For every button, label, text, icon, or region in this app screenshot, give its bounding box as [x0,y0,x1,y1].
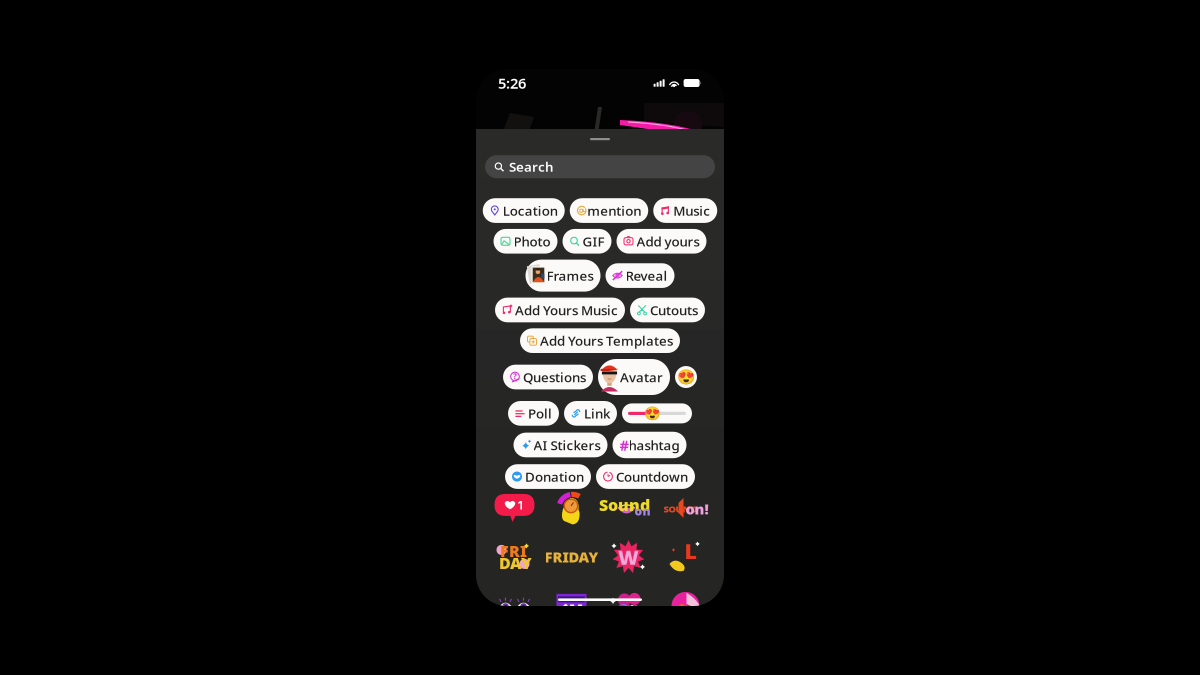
staticText: on! [685,499,708,519]
staticText: FRI [500,540,527,561]
button[interactable]: Poll [508,401,559,426]
button[interactable]: Sticker [600,588,657,624]
staticText: Search [509,158,554,175]
staticText: Donation [525,468,584,485]
staticText: Music [673,202,710,219]
staticText: Location [503,202,558,219]
button[interactable]: Sticker [600,539,657,575]
button[interactable]: Link [564,401,617,426]
button[interactable]: AI Stickers [513,433,607,457]
staticText: FRIDAY [544,547,598,567]
staticText: BFF [619,602,638,616]
button[interactable]: Emoji slider [622,403,692,423]
button[interactable]: Sticker [657,490,714,526]
button[interactable]: Sticker [486,539,543,575]
staticText: Add yours [636,232,699,250]
button[interactable]: Sticker [543,539,600,575]
button[interactable]: Cutouts [630,298,705,322]
staticText: 5:26 [498,73,526,93]
button[interactable]: Sticker [600,490,657,526]
button[interactable]: Avatar [598,359,670,395]
staticText: L [684,537,696,565]
button[interactable]: Emoji reaction [675,366,697,388]
staticText: 😍 [677,369,695,385]
button[interactable]: Sticker [486,490,543,526]
staticText: Cutouts [650,301,698,319]
button[interactable]: Sticker [486,588,543,624]
staticText: on [634,503,650,519]
staticText: SOUND [663,503,697,515]
button[interactable]: Add yours [616,229,706,254]
staticText: Add Yours Templates [540,332,673,349]
staticText: Sound [599,494,650,515]
button[interactable]: Add Yours Templates [520,328,680,353]
staticText: Add Yours Music [515,301,618,319]
button[interactable]: Reveal [605,263,674,288]
staticText: # [619,435,628,455]
button[interactable]: GIF [562,229,611,254]
button[interactable]: Photo [493,229,557,254]
button[interactable]: Music [653,198,717,223]
button[interactable]: Search [485,155,715,178]
button[interactable]: Location [483,198,565,223]
staticText: Link [584,404,610,422]
staticText: Poll [528,404,552,422]
staticText: AI Stickers [533,436,600,454]
staticText: Frames [546,267,593,284]
staticText: 1 [517,497,524,513]
button[interactable]: Sticker [543,490,600,526]
staticText: Avatar [620,368,663,386]
staticText: Reveal [625,267,667,284]
staticText: DAY [499,552,532,573]
button[interactable]: Sticker [657,588,714,624]
staticText: GIF [582,232,604,250]
button[interactable]: Sticker [657,539,714,575]
button[interactable]: Frames [525,260,600,292]
staticText: ? [513,371,517,381]
staticText: Questions [523,368,586,386]
button[interactable]: mention [570,198,648,223]
button[interactable]: Add Yours Music [495,298,625,322]
staticText: 4M [560,599,583,619]
button[interactable]: Countdown [596,464,695,489]
staticText: W [618,544,639,570]
staticText: mention [587,202,641,219]
button[interactable]: Donation [505,464,591,489]
staticText: Photo [513,232,550,250]
staticText: hashtag [628,436,679,454]
button[interactable]: # [612,432,686,458]
staticText: Countdown [616,468,688,485]
staticText: 😍 [643,406,660,421]
button[interactable]: ? [503,365,593,389]
button[interactable]: Sticker [543,588,600,624]
